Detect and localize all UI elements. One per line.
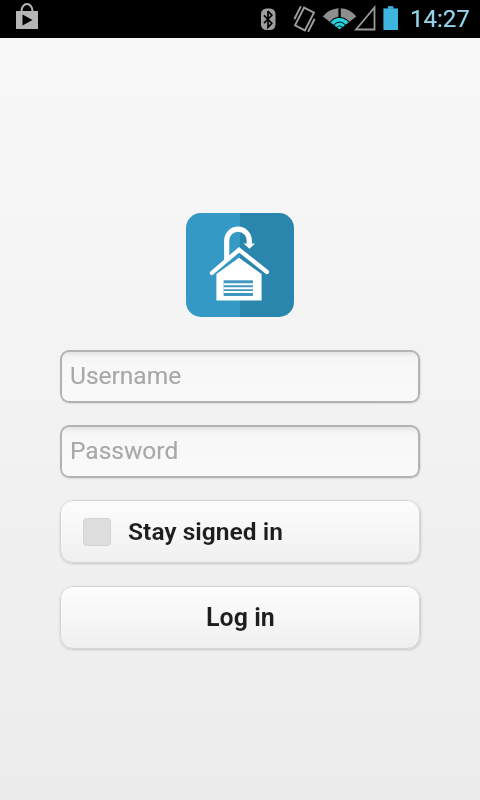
staticText: Password xyxy=(70,436,179,465)
staticText: Username xyxy=(70,361,182,390)
staticText: 14:27 xyxy=(410,5,470,33)
button[interactable]: Stay signed in xyxy=(60,500,420,563)
staticText: Log in xyxy=(206,603,275,632)
button[interactable]: Password xyxy=(60,425,420,478)
button[interactable]: Username xyxy=(60,350,420,403)
staticText: Stay signed in xyxy=(128,517,283,546)
button[interactable]: Log in xyxy=(60,586,420,649)
other: App logo xyxy=(186,213,294,317)
